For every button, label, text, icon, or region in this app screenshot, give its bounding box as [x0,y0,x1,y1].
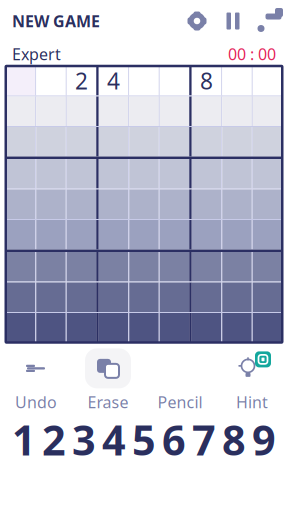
button[interactable] [6,252,35,281]
staticText: 2 [42,412,66,467]
button[interactable]: 7 [189,416,219,462]
button[interactable] [192,220,221,249]
button[interactable] [253,252,282,281]
button[interactable]: Settings [178,0,216,42]
button[interactable]: NEW GAME [0,0,108,42]
button[interactable] [192,252,221,281]
button[interactable]: 4 [99,66,128,95]
button[interactable]: 2 [39,416,69,462]
button[interactable] [253,189,282,219]
button[interactable]: Undo [0,350,72,410]
button[interactable] [129,313,159,342]
button[interactable] [99,220,128,249]
button[interactable] [253,159,282,188]
button[interactable] [99,282,128,312]
button[interactable]: 6 [159,416,189,462]
button[interactable] [67,252,96,281]
button[interactable]: 8 [219,416,249,462]
button[interactable] [6,66,35,95]
button[interactable] [99,313,128,342]
button[interactable] [129,189,159,219]
button[interactable] [160,66,189,95]
button[interactable]: 8 [192,66,221,95]
button[interactable] [253,66,282,95]
button[interactable] [192,313,221,342]
button[interactable] [144,350,216,410]
button[interactable] [222,282,252,312]
button[interactable] [253,96,282,126]
button[interactable] [6,159,35,188]
button[interactable]: 9 [249,416,279,462]
button[interactable]: 2 [67,66,96,95]
button[interactable]: Theme [250,0,288,42]
button[interactable] [222,252,252,281]
button[interactable]: 3 [69,416,99,462]
button[interactable]: 5 [129,416,159,462]
button[interactable] [129,66,159,95]
staticText: 8 [200,66,213,96]
button[interactable] [129,220,159,249]
button[interactable] [6,189,35,219]
button[interactable] [253,127,282,156]
button[interactable]: Hint [216,350,288,410]
button[interactable] [222,313,252,342]
button[interactable] [160,220,189,249]
button[interactable] [253,220,282,249]
button[interactable]: 1 [9,416,39,462]
button[interactable] [129,252,159,281]
button[interactable] [222,66,252,95]
button[interactable] [6,96,35,126]
button[interactable] [36,252,66,281]
button[interactable] [253,313,282,342]
button[interactable] [222,189,252,219]
button[interactable] [6,313,35,342]
button[interactable]: 4 [99,416,129,462]
button[interactable] [36,313,66,342]
button[interactable] [129,159,159,188]
button[interactable] [222,159,252,188]
button[interactable] [36,189,66,219]
button[interactable] [129,282,159,312]
button[interactable] [253,282,282,312]
button[interactable] [6,220,35,249]
button[interactable] [160,252,189,281]
button[interactable] [160,282,189,312]
button[interactable]: Pause [216,0,250,42]
button[interactable] [67,282,96,312]
button[interactable] [36,159,66,188]
button[interactable] [192,282,221,312]
button[interactable] [67,313,96,342]
button[interactable] [36,66,66,95]
button[interactable] [6,127,35,156]
button[interactable] [6,282,35,312]
button[interactable]: Erase [72,350,144,410]
button[interactable] [99,252,128,281]
button[interactable] [36,220,66,249]
button[interactable] [36,282,66,312]
button[interactable] [160,313,189,342]
button[interactable] [67,220,96,249]
button[interactable] [222,220,252,249]
